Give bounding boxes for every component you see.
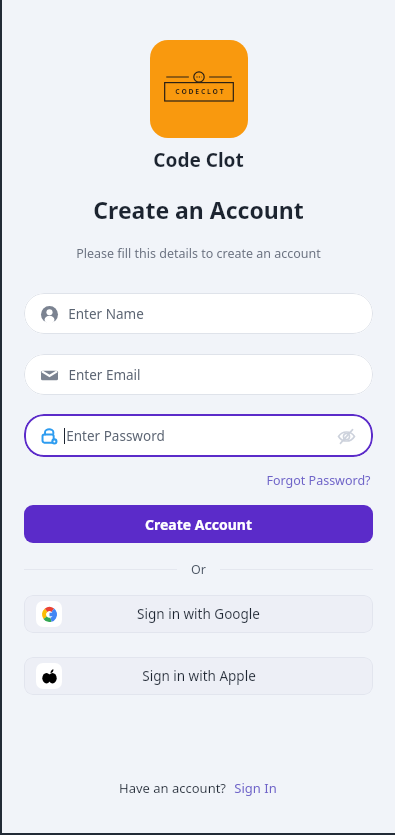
staticText: Create Account [145,515,252,534]
staticText: Create an Account [93,194,304,225]
staticText: Sign in with Google [137,605,260,623]
button[interactable]: Sign In [232,777,279,799]
staticText: Code Clot [153,147,244,173]
staticText: Enter Name [68,305,144,323]
staticText: Please fill this details to create an ac… [76,245,321,262]
staticText: Have an account? [119,779,226,797]
staticText: Sign in with Apple [142,667,256,685]
staticText: Or [191,561,206,578]
staticText: Forgot Password? [266,472,371,489]
staticText: Enter Email [68,366,141,384]
staticText: Enter Password [66,427,165,445]
button[interactable]: Enter Password [24,414,373,457]
button[interactable]: Create Account [24,505,373,543]
staticText: Sign In [234,779,277,797]
staticText: C O D E C L O T [175,87,224,96]
button[interactable]: Show password [335,425,357,447]
button[interactable]: Forgot Password? [264,470,373,491]
button[interactable]: Enter Name [24,293,373,334]
button[interactable]: Enter Email [24,354,373,395]
button[interactable]: Sign in with Apple [24,657,373,695]
button[interactable]: Sign in with Google [24,595,373,633]
